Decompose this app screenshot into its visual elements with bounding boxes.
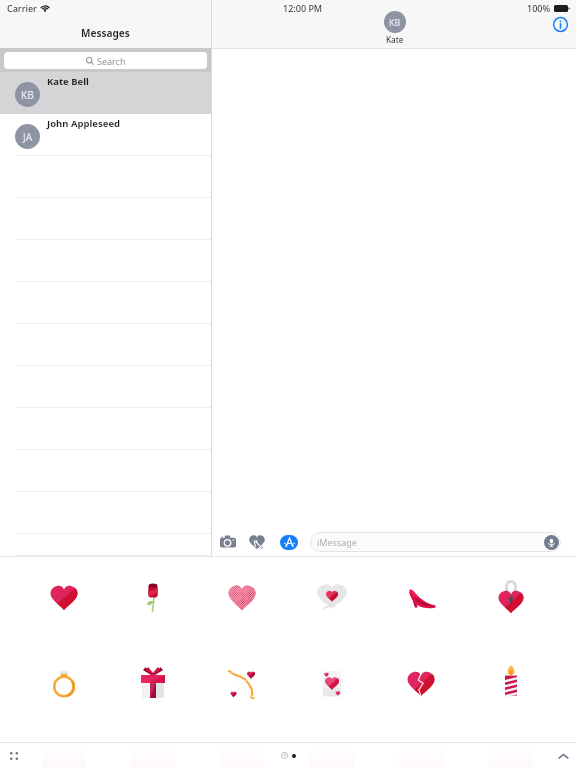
button[interactable]: iMessage <box>310 532 561 552</box>
staticText: KB <box>389 16 401 28</box>
staticText: Carrier <box>7 2 37 14</box>
button[interactable]: Record audio <box>544 535 559 550</box>
staticText: 100% <box>527 2 551 14</box>
staticText: JA <box>23 130 33 144</box>
button[interactable]: Search <box>4 52 207 69</box>
button[interactable]: All apps <box>5 747 23 765</box>
staticText: Messages <box>81 26 130 40</box>
button[interactable]: JA <box>0 114 211 156</box>
button[interactable]: Details <box>550 14 570 34</box>
staticText: Search <box>97 55 126 67</box>
button[interactable]: Expand <box>554 747 572 765</box>
button[interactable]: Digital Touch <box>246 531 268 553</box>
staticText: 12:00 PM <box>283 2 323 14</box>
button[interactable]: App Store <box>278 531 300 553</box>
staticText: iMessage <box>317 536 357 548</box>
staticText: John Appleseed <box>47 117 121 130</box>
staticText: Kate <box>386 34 404 45</box>
staticText: Kate Bell <box>47 75 89 88</box>
staticText: KB <box>21 88 34 102</box>
button[interactable]: KB <box>0 72 211 114</box>
button[interactable]: KB <box>384 11 406 45</box>
button[interactable]: Camera <box>217 531 239 553</box>
